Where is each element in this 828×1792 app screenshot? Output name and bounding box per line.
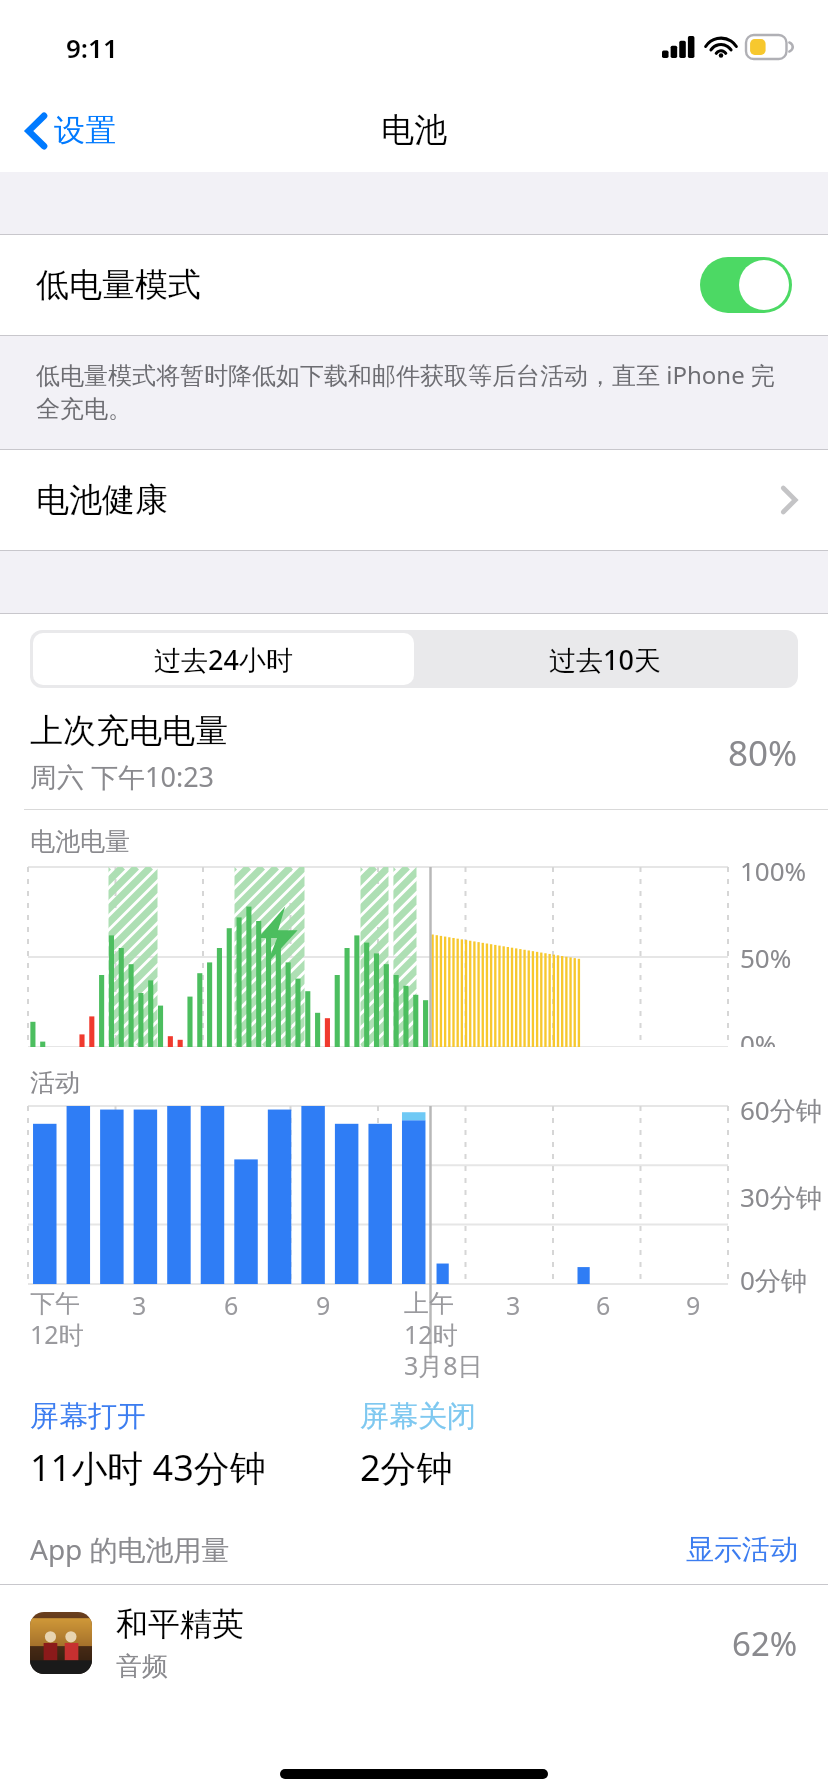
staticText: 0分钟 bbox=[740, 1262, 807, 1298]
staticText: 3 bbox=[132, 1288, 147, 1322]
staticText: 50% bbox=[740, 940, 792, 975]
button[interactable]: 低电量模式开关 bbox=[700, 257, 792, 313]
staticText: 活动 bbox=[30, 1067, 80, 1098]
staticText: 3 bbox=[506, 1288, 521, 1322]
staticText: 和平精英 bbox=[116, 1604, 244, 1644]
staticText: 电池电量 bbox=[30, 826, 130, 857]
staticText: 9:11 bbox=[66, 30, 118, 65]
staticText: 过去10天 bbox=[549, 641, 661, 678]
staticText: 显示活动 bbox=[686, 1532, 798, 1567]
staticText: 上次充电电量 bbox=[30, 710, 228, 752]
staticText: 9 bbox=[686, 1288, 701, 1322]
staticText: 下午 12时 bbox=[30, 1288, 84, 1351]
button[interactable]: 电池健康 bbox=[0, 450, 828, 550]
staticText: 上午 12时 3月8日 bbox=[404, 1288, 483, 1382]
staticText: 音频 bbox=[116, 1650, 168, 1683]
staticText: 0% bbox=[740, 1026, 777, 1061]
button[interactable]: 过去10天 bbox=[414, 633, 795, 685]
staticText: 11小时 43分钟 bbox=[30, 1443, 266, 1492]
staticText: 62% bbox=[732, 1621, 798, 1666]
staticText: 电池健康 bbox=[36, 479, 168, 521]
staticText: 电池 bbox=[381, 109, 447, 151]
staticText: 过去24小时 bbox=[154, 641, 293, 678]
staticText: 6 bbox=[224, 1288, 239, 1322]
staticText: 周六 下午10:23 bbox=[30, 758, 215, 795]
staticText: 60分钟 bbox=[740, 1092, 822, 1128]
button[interactable]: 低电量模式 bbox=[0, 235, 828, 335]
staticText: 6 bbox=[596, 1288, 611, 1322]
button[interactable]: 设置 bbox=[18, 103, 124, 158]
staticText: 9 bbox=[316, 1288, 331, 1322]
button[interactable]: 显示活动 bbox=[686, 1532, 798, 1567]
staticText: 屏幕打开 bbox=[30, 1398, 146, 1435]
staticText: App 的电池用量 bbox=[30, 1530, 230, 1568]
staticText: 100% bbox=[740, 853, 807, 888]
staticText: 设置 bbox=[54, 111, 116, 150]
staticText: 屏幕关闭 bbox=[360, 1398, 476, 1435]
staticText: 2分钟 bbox=[360, 1443, 453, 1492]
staticText: 30分钟 bbox=[740, 1179, 822, 1215]
staticText: 低电量模式将暂时降低如下载和邮件获取等后台活动，直至 iPhone 完全充电。 bbox=[36, 358, 798, 425]
staticText: 80% bbox=[728, 729, 798, 777]
button[interactable]: 过去24小时 bbox=[33, 633, 414, 685]
staticText: 低电量模式 bbox=[36, 264, 201, 306]
button[interactable]: 和平精英 bbox=[0, 1585, 828, 1701]
